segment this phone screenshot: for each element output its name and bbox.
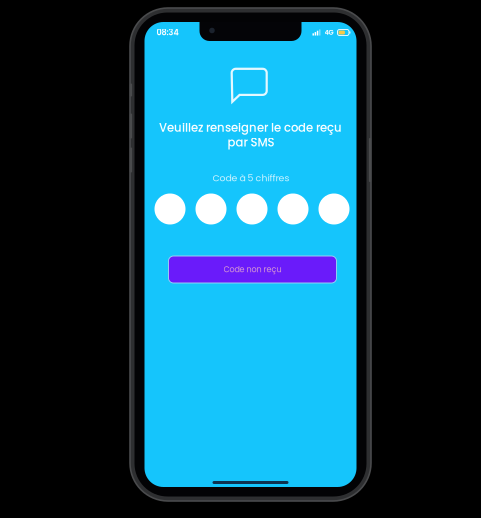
staticText: Code non reçu [223, 264, 281, 275]
staticText: Veuillez renseigner le code reçu [159, 119, 342, 136]
button[interactable]: Code non reçu [168, 256, 336, 283]
staticText: 08:34 [156, 27, 178, 38]
staticText: 4G [324, 28, 333, 37]
staticText: Code à 5 chiffres [212, 171, 289, 185]
staticText: par SMS [227, 134, 274, 151]
